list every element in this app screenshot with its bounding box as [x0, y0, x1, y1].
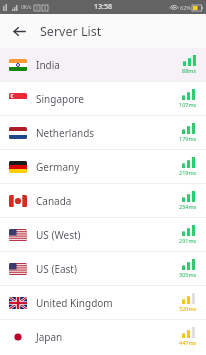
staticText: 88ms [182, 67, 197, 74]
staticText: 13:58 [94, 2, 112, 12]
staticText: US (East) [36, 262, 77, 276]
staticText: Japan [36, 330, 63, 344]
staticText: 305ms [179, 271, 197, 278]
staticText: Server List [40, 23, 102, 40]
staticText: Singapore [36, 92, 84, 106]
button[interactable]: Singapore [0, 82, 206, 115]
button[interactable]: Germany [0, 150, 206, 183]
button[interactable]: Netherlands [0, 116, 206, 149]
staticText: 291ms [179, 237, 197, 244]
button[interactable]: Japan [0, 320, 206, 353]
staticText: Germany [36, 160, 80, 174]
staticText: 254ms [179, 203, 197, 210]
staticText: Netherlands [36, 126, 95, 140]
staticText: 0K/s [21, 4, 32, 11]
button[interactable]: Canada [0, 184, 206, 217]
staticText: 447ms [179, 339, 197, 346]
button[interactable]: India [0, 48, 206, 81]
button[interactable]: Back [6, 18, 32, 44]
staticText: 62% [180, 4, 191, 11]
button[interactable]: US (East) [0, 252, 206, 285]
staticText: US (West) [36, 228, 81, 242]
staticText: 179ms [179, 135, 197, 142]
staticText: India [36, 58, 60, 72]
staticText: 219ms [179, 169, 197, 176]
button[interactable]: United Kingdom [0, 286, 206, 319]
button[interactable]: US (West) [0, 218, 206, 251]
staticText: Canada [36, 194, 72, 208]
staticText: 320ms [179, 305, 197, 312]
staticText: 107ms [179, 101, 197, 108]
staticText: United Kingdom [36, 296, 113, 310]
